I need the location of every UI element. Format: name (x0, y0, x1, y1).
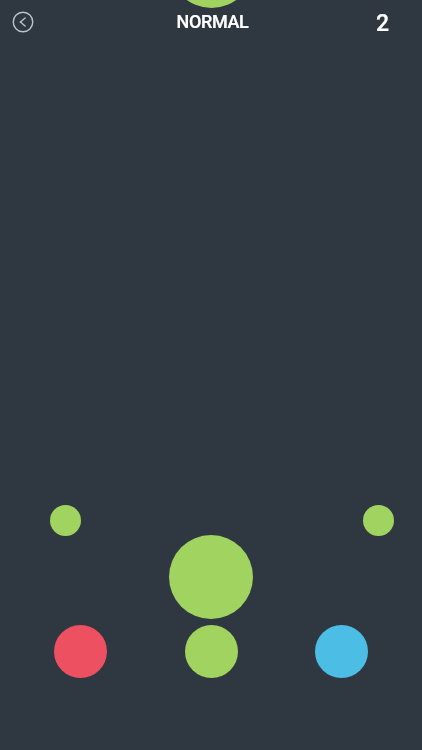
staticText: 2 (376, 10, 390, 37)
button[interactable]: Green dot (50, 505, 81, 536)
button[interactable]: Red (54, 625, 107, 678)
button[interactable]: Green (185, 625, 238, 678)
button[interactable]: Blue (315, 625, 368, 678)
button[interactable]: Back (12, 11, 34, 33)
button[interactable]: Current dot (169, 535, 253, 619)
staticText: NORMAL (176, 11, 249, 32)
button[interactable]: Green dot (363, 505, 394, 536)
